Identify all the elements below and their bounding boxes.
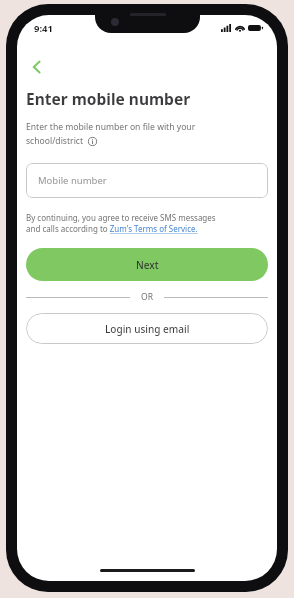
button[interactable]: Back: [20, 50, 54, 84]
staticText: school/district: [26, 135, 84, 147]
staticText: Login using email: [105, 322, 190, 336]
staticText: Enter the mobile number on file with you…: [26, 121, 196, 133]
staticText: 9:41: [34, 22, 53, 35]
staticText: Enter mobile number: [26, 88, 191, 109]
staticText: OR: [141, 291, 153, 303]
button[interactable]: Mobile number: [26, 163, 268, 198]
button[interactable]: More information: [87, 136, 98, 147]
staticText: By continuing, you agree to receive SMS …: [26, 212, 216, 235]
button[interactable]: Next: [26, 248, 268, 281]
staticText: Mobile number: [38, 174, 107, 187]
button[interactable]: Login using email: [26, 313, 268, 344]
staticText: Next: [136, 258, 159, 272]
